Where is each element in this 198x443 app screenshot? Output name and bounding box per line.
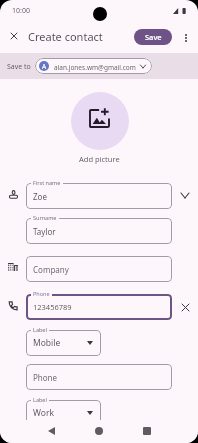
button[interactable]: Zoe — [26, 183, 172, 209]
staticText: Save — [145, 32, 162, 42]
button[interactable]: Phone — [26, 364, 172, 390]
button[interactable]: Work — [26, 400, 101, 426]
button[interactable]: Add picture — [71, 92, 129, 150]
staticText: Phone — [33, 372, 58, 383]
button[interactable]: Close — [3, 25, 25, 47]
staticText: Label — [33, 326, 47, 333]
staticText: Surname — [33, 214, 57, 221]
staticText: Company — [33, 264, 69, 275]
staticText: A — [42, 62, 47, 71]
button[interactable]: Company — [26, 256, 172, 282]
staticText: Save to — [7, 62, 31, 72]
button[interactable]: More options — [176, 28, 196, 48]
button[interactable]: Expand name fields — [176, 186, 194, 204]
button[interactable]: Mobile — [26, 330, 101, 356]
staticText: 10:00 — [12, 6, 30, 16]
button[interactable]: Clear phone — [176, 298, 194, 316]
staticText: Add picture — [79, 154, 120, 164]
button[interactable]: A — [35, 58, 152, 74]
staticText: Taylor — [33, 226, 56, 237]
staticText: 123456789 — [33, 302, 72, 312]
staticText: Mobile — [33, 337, 61, 349]
button[interactable]: Back — [41, 421, 62, 441]
button[interactable]: Save — [134, 29, 172, 45]
staticText: Label — [33, 396, 47, 403]
button[interactable]: 123456789 — [26, 294, 172, 320]
staticText: Work — [33, 407, 54, 419]
staticText: Zoe — [33, 191, 47, 202]
button[interactable]: Recent apps — [136, 421, 157, 441]
staticText: First name — [33, 179, 61, 186]
button[interactable]: Home — [88, 421, 109, 441]
staticText: Create contact — [28, 29, 103, 44]
staticText: Phone — [33, 290, 50, 297]
staticText: alan.jones.wm@gmail.com — [54, 63, 136, 72]
button[interactable]: Taylor — [26, 218, 172, 244]
